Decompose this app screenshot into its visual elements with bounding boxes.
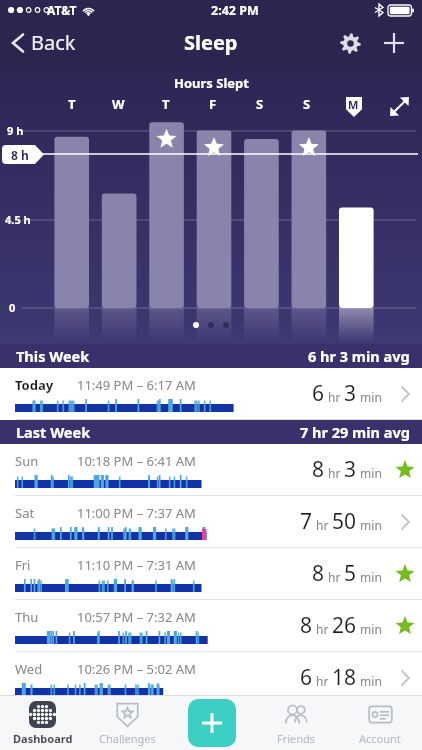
staticText: T: [162, 95, 170, 113]
staticText: 10:57 PM – 7:32 AM: [77, 608, 196, 626]
staticText: AT&T: [47, 2, 77, 18]
staticText: 3: [344, 455, 357, 484]
button[interactable]: Account: [338, 696, 422, 750]
staticText: Today: [15, 376, 77, 394]
staticText: M: [348, 97, 359, 112]
staticText: S: [256, 95, 264, 113]
button[interactable]: Friends: [254, 696, 338, 750]
staticText: Wed: [15, 660, 77, 678]
staticText: 18: [332, 663, 357, 692]
staticText: S: [303, 95, 311, 113]
staticText: hr: [325, 465, 344, 481]
staticText: min: [357, 673, 382, 689]
staticText: Sleep: [184, 29, 238, 56]
staticText: min: [357, 621, 382, 637]
staticText: 10:22 PM – 6:53 AM: [77, 709, 196, 727]
button[interactable]: Add: [372, 21, 416, 65]
staticText: 26: [332, 611, 357, 640]
button[interactable]: Wed: [0, 652, 422, 704]
staticText: 50: [332, 507, 357, 536]
button[interactable]: Settings: [328, 21, 372, 65]
button[interactable]: Today: [0, 368, 422, 420]
staticText: Challenges: [99, 731, 156, 746]
staticText: Dashboard: [13, 731, 73, 746]
staticText: 11:10 PM – 7:31 AM: [77, 556, 196, 574]
staticText: 4.5 h: [5, 212, 31, 227]
staticText: This Week: [16, 346, 90, 366]
button[interactable]: Last Week: [0, 420, 422, 444]
staticText: Sat: [15, 504, 77, 522]
staticText: W: [112, 95, 125, 113]
staticText: hr: [313, 621, 332, 637]
staticText: 11:00 PM – 7:37 AM: [77, 504, 196, 522]
staticText: 3: [344, 379, 357, 408]
staticText: hr: [325, 569, 344, 585]
staticText: 5: [344, 559, 357, 588]
button[interactable]: Tue: [0, 704, 422, 750]
staticText: 7 hr 29 min avg: [300, 422, 410, 442]
staticText: 2:42 PM: [211, 2, 259, 19]
staticText: 7: [300, 507, 313, 536]
staticText: 8: [300, 713, 313, 742]
button[interactable]: Dashboard: [0, 696, 85, 750]
button[interactable]: Back: [0, 21, 88, 64]
button[interactable]: Challenges: [85, 696, 170, 750]
staticText: min: [357, 569, 382, 585]
staticText: min: [357, 389, 382, 405]
staticText: Fri: [15, 556, 77, 574]
staticText: Sun: [15, 452, 77, 470]
staticText: 0: [9, 300, 16, 315]
staticText: hr: [313, 517, 332, 533]
button[interactable]: This Week: [0, 344, 422, 368]
staticText: min: [357, 465, 382, 481]
staticText: hr: [313, 673, 332, 689]
staticText: 6: [312, 379, 325, 408]
staticText: Friends: [277, 731, 316, 746]
staticText: hr: [325, 389, 344, 405]
button[interactable]: Sun: [0, 444, 422, 496]
staticText: min: [357, 723, 382, 739]
staticText: 8: [312, 455, 325, 484]
staticText: min: [357, 517, 382, 533]
staticText: Account: [359, 731, 401, 746]
staticText: 8: [300, 611, 313, 640]
staticText: 8: [312, 559, 325, 588]
staticText: 9 h: [7, 123, 24, 138]
staticText: Last Week: [16, 422, 91, 442]
button[interactable]: Add: [188, 699, 236, 747]
staticText: F: [209, 95, 217, 113]
staticText: Hours Slept: [174, 74, 249, 92]
staticText: 10:26 PM – 5:02 AM: [77, 660, 196, 678]
staticText: Back: [31, 29, 76, 56]
button[interactable]: Sat: [0, 496, 422, 548]
staticText: 8 h: [11, 147, 29, 163]
staticText: 6 hr 3 min avg: [308, 346, 410, 366]
button[interactable]: Fri: [0, 548, 422, 600]
button[interactable]: Thu: [0, 600, 422, 652]
staticText: hr: [313, 723, 332, 739]
staticText: T: [68, 95, 76, 113]
staticText: Thu: [15, 608, 77, 626]
staticText: 11:49 PM – 6:17 AM: [77, 376, 196, 394]
staticText: 10:18 PM – 6:41 AM: [77, 452, 196, 470]
staticText: Tue: [15, 709, 77, 727]
button[interactable]: Expand chart: [384, 91, 414, 121]
staticText: 6: [300, 663, 313, 692]
